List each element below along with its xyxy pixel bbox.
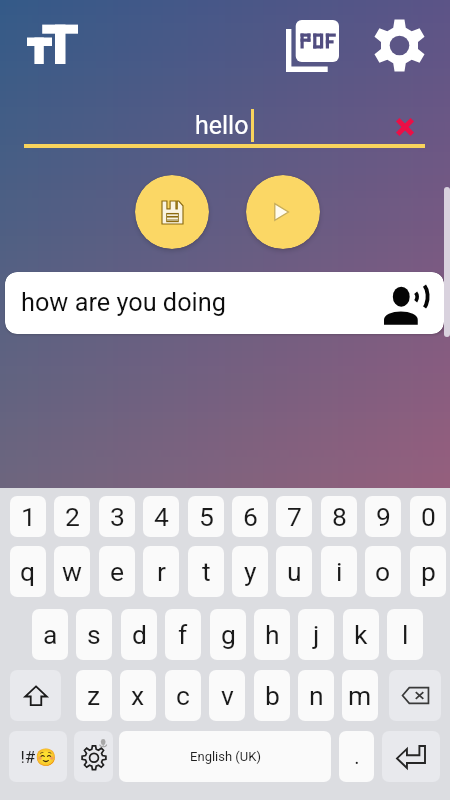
button[interactable]: Clear	[385, 107, 425, 147]
button[interactable]: how are you doing	[5, 272, 444, 334]
staticText: w	[62, 556, 82, 587]
button[interactable]: Shift	[10, 670, 61, 721]
button[interactable]: English (UK)	[119, 731, 331, 782]
staticText: b	[265, 680, 280, 711]
button[interactable]: .	[339, 731, 374, 782]
button[interactable]: h	[254, 609, 290, 660]
button[interactable]: Enter	[382, 731, 440, 782]
button[interactable]: x	[120, 670, 156, 721]
button[interactable]: Backspace	[389, 670, 441, 721]
staticText: 8	[332, 501, 347, 532]
staticText: !#☺	[20, 747, 57, 767]
button[interactable]: q	[10, 546, 46, 597]
button[interactable]: i	[321, 546, 357, 597]
button[interactable]: e	[99, 546, 135, 597]
button[interactable]: t	[188, 546, 224, 597]
staticText: g	[221, 619, 236, 650]
staticText: k	[354, 619, 368, 650]
button[interactable]: Text size	[14, 9, 78, 73]
button[interactable]: 9	[365, 496, 401, 537]
staticText: 5	[199, 501, 214, 532]
button[interactable]: m	[342, 670, 378, 721]
staticText: 0	[421, 501, 436, 532]
button[interactable]: a	[32, 609, 68, 660]
button[interactable]: !#☺	[9, 731, 67, 782]
staticText: y	[244, 556, 257, 587]
staticText: 6	[243, 501, 258, 532]
button[interactable]: Play	[246, 175, 320, 249]
button[interactable]: y	[232, 546, 268, 597]
button[interactable]: d	[121, 609, 157, 660]
staticText: u	[287, 556, 302, 587]
staticText: r	[157, 556, 166, 587]
button[interactable]: 0	[410, 496, 446, 537]
staticText: f	[178, 619, 188, 650]
staticText: m	[348, 680, 372, 711]
staticText: v	[221, 680, 234, 711]
staticText: c	[176, 680, 190, 711]
staticText: 4	[154, 501, 169, 532]
button[interactable]: 3	[99, 496, 135, 537]
button[interactable]: g	[210, 609, 246, 660]
button[interactable]: 5	[188, 496, 224, 537]
button[interactable]: o	[365, 546, 401, 597]
button[interactable]: s	[76, 609, 112, 660]
button[interactable]: c	[165, 670, 201, 721]
staticText: .	[354, 745, 360, 768]
button[interactable]: n	[298, 670, 334, 721]
staticText: o	[375, 556, 391, 587]
button[interactable]: r	[143, 546, 179, 597]
button[interactable]: 2	[54, 496, 90, 537]
staticText: a	[43, 619, 58, 650]
staticText: 1	[21, 501, 36, 532]
staticText: how are you doing	[21, 288, 226, 318]
button[interactable]: v	[209, 670, 245, 721]
staticText: i	[336, 556, 343, 587]
button[interactable]: p	[410, 546, 446, 597]
button[interactable]: 6	[232, 496, 268, 537]
button[interactable]: Export PDF	[277, 11, 348, 82]
button[interactable]: 8	[321, 496, 357, 537]
button[interactable]: k	[343, 609, 379, 660]
staticText: 9	[376, 501, 391, 532]
staticText: hello	[195, 111, 249, 140]
button[interactable]: u	[276, 546, 312, 597]
button[interactable]: Settings	[363, 10, 434, 81]
button[interactable]: w	[54, 546, 90, 597]
staticText: 2	[65, 501, 80, 532]
staticText: l	[402, 619, 409, 650]
staticText: j	[313, 619, 320, 650]
button[interactable]: f	[165, 609, 201, 660]
button[interactable]: 1	[10, 496, 46, 537]
button[interactable]: b	[254, 670, 290, 721]
staticText: d	[132, 619, 147, 650]
button[interactable]: z	[76, 670, 112, 721]
staticText: p	[421, 556, 436, 587]
button[interactable]: 7	[276, 496, 312, 537]
staticText: q	[20, 556, 36, 587]
button[interactable]: j	[298, 609, 334, 660]
staticText: x	[131, 680, 145, 711]
button[interactable]: Keyboard settings	[74, 731, 113, 782]
staticText: 3	[110, 501, 125, 532]
button[interactable]: l	[387, 609, 423, 660]
staticText: s	[87, 619, 101, 650]
button[interactable]: Save	[135, 175, 209, 249]
staticText: h	[265, 619, 280, 650]
staticText: English (UK)	[190, 749, 261, 764]
staticText: n	[309, 680, 324, 711]
button[interactable]: 4	[143, 496, 179, 537]
staticText: z	[87, 680, 101, 711]
staticText: 7	[287, 501, 302, 532]
staticText: e	[110, 556, 125, 587]
staticText: t	[202, 556, 211, 587]
